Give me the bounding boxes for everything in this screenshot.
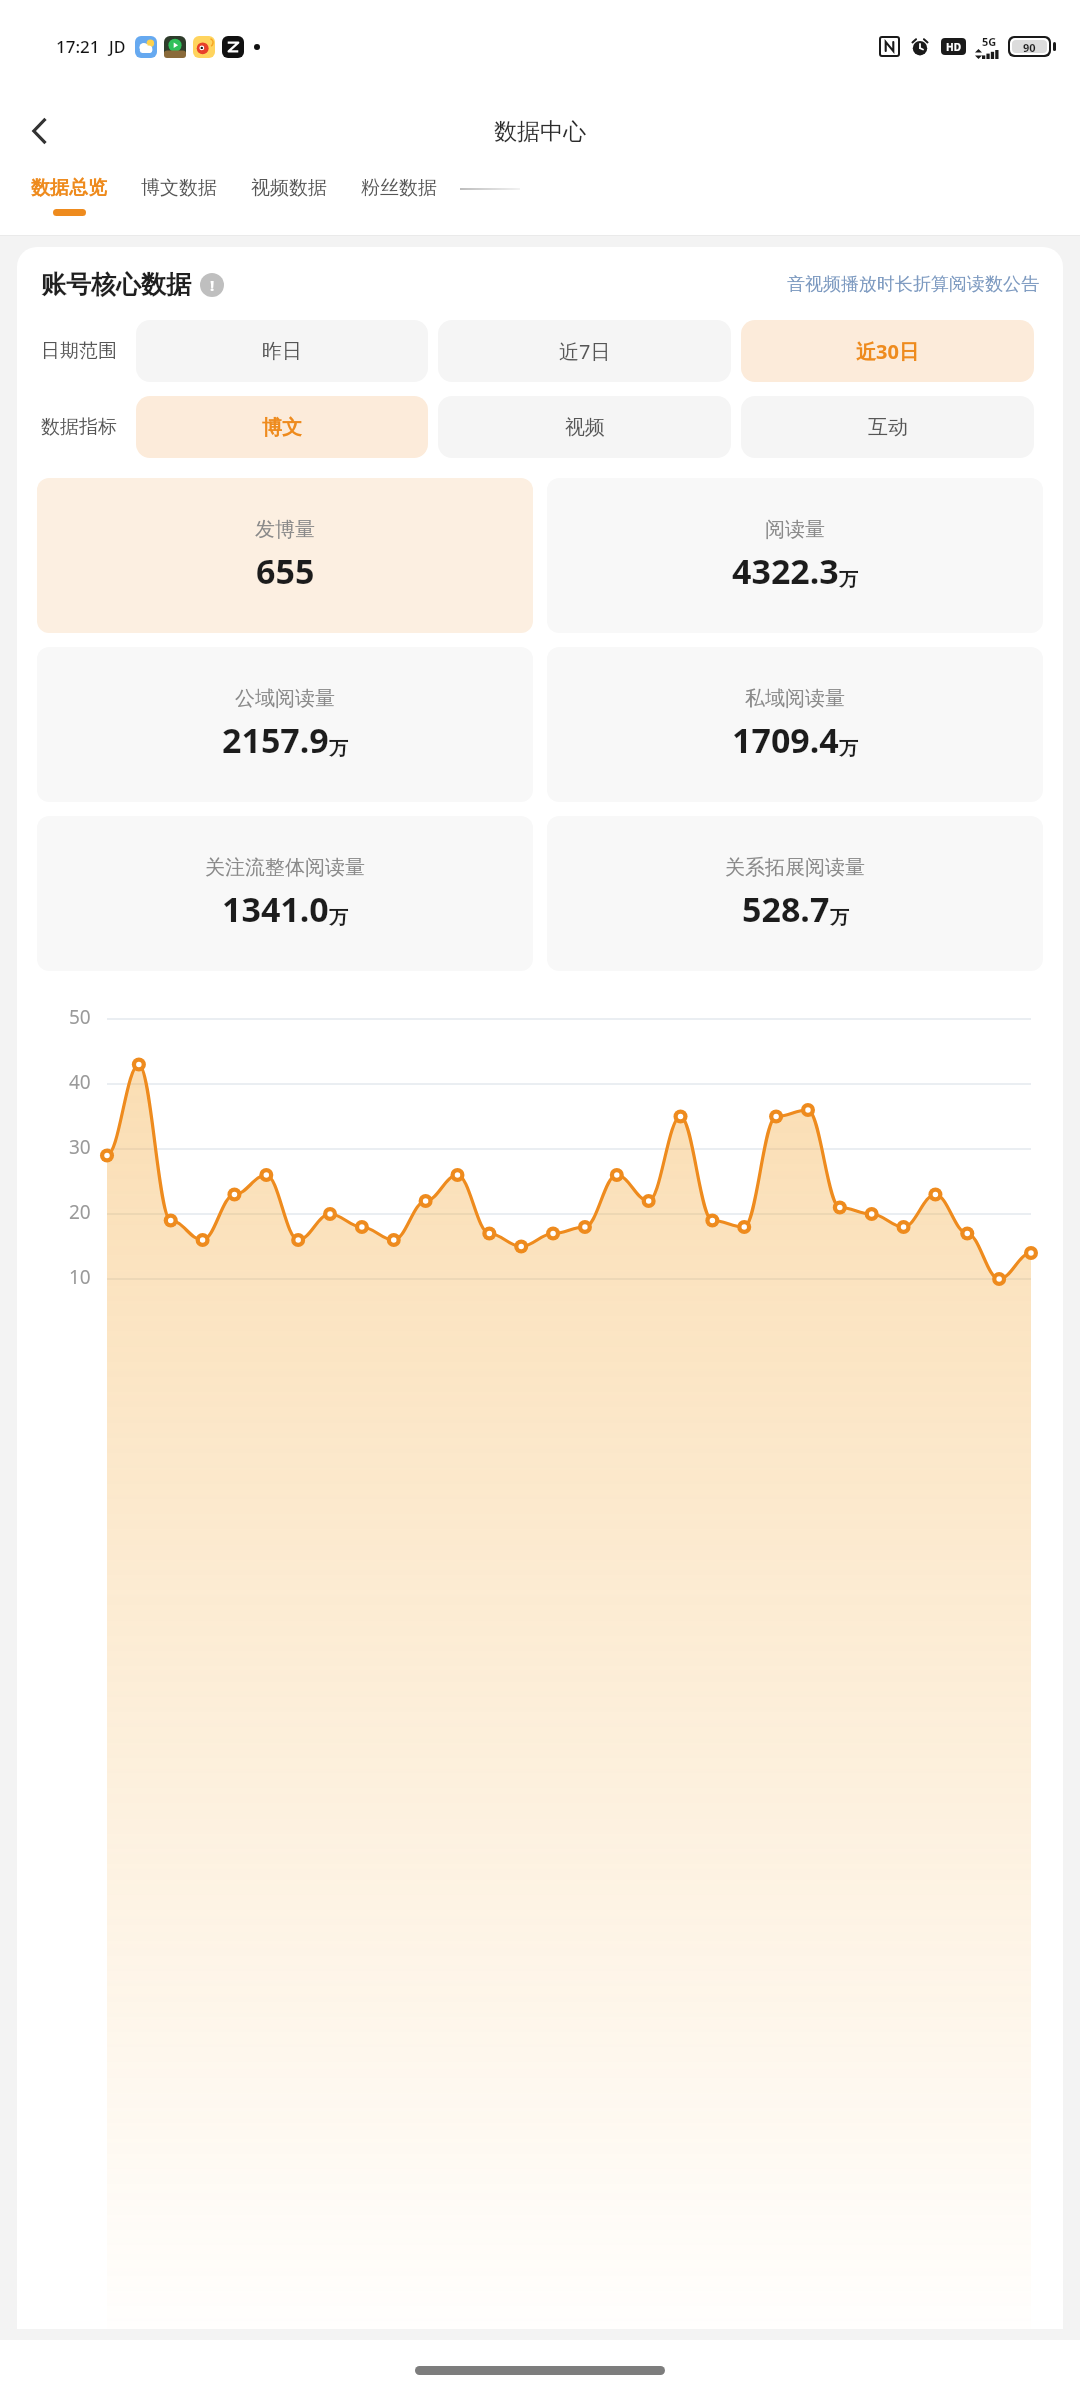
staticText: 博文 <box>262 415 302 440</box>
staticText: 30 <box>69 1134 91 1160</box>
staticText: 万 <box>329 906 348 930</box>
staticText: 关注流整体阅读量 <box>205 855 365 880</box>
staticText: 40 <box>69 1069 91 1095</box>
button[interactable]: 关系拓展阅读量 <box>547 816 1043 971</box>
staticText: 万 <box>839 568 858 592</box>
button[interactable]: Back <box>12 103 68 159</box>
staticText: 10 <box>69 1264 91 1290</box>
button[interactable]: 互动 <box>741 396 1034 458</box>
button[interactable]: 私域阅读量 <box>547 647 1043 802</box>
staticText: 数据中心 <box>494 117 586 146</box>
staticText: 20 <box>69 1199 91 1225</box>
staticText: 昨日 <box>262 339 302 364</box>
button[interactable]: 博文 <box>136 396 428 458</box>
button[interactable]: 音视频播放时长折算阅读数公告 <box>787 273 1039 296</box>
staticText: 关系拓展阅读量 <box>725 855 865 880</box>
staticText: 视频数据 <box>251 176 327 200</box>
staticText: 万 <box>839 737 858 761</box>
staticText: 博文数据 <box>141 176 217 200</box>
button[interactable]: 博文数据 <box>124 170 234 209</box>
staticText: 数据总览 <box>31 176 107 200</box>
button[interactable]: 公域阅读量 <box>37 647 533 802</box>
staticText: 粉丝数据 <box>361 176 437 200</box>
button[interactable]: 视频数据 <box>234 170 344 209</box>
button[interactable]: 数据总览 <box>14 170 124 216</box>
staticText: 1341.0 <box>222 886 329 932</box>
staticText: 万 <box>329 737 348 761</box>
staticText: 近7日 <box>559 338 611 365</box>
button[interactable]: 粉丝数据 <box>344 170 454 209</box>
staticText: 4322.3 <box>732 548 839 594</box>
button[interactable]: 关注流整体阅读量 <box>37 816 533 971</box>
staticText: 5G <box>982 34 997 49</box>
staticText: JD <box>109 36 126 58</box>
staticText: 发博量 <box>255 517 315 542</box>
staticText: 655 <box>256 548 315 594</box>
staticText: 17:21 <box>56 35 100 58</box>
staticText: 近30日 <box>856 338 919 365</box>
staticText: 数据指标 <box>41 415 117 439</box>
staticText: 账号核心数据 <box>41 269 191 300</box>
staticText: 528.7 <box>742 886 830 932</box>
staticText: 2157.9 <box>222 717 329 763</box>
button[interactable]: 视频 <box>438 396 731 458</box>
button[interactable]: 近30日 <box>741 320 1034 382</box>
staticText: 1709.4 <box>732 717 839 763</box>
staticText: 日期范围 <box>41 339 117 363</box>
staticText: 万 <box>830 906 849 930</box>
staticText: 互动 <box>868 415 908 440</box>
staticText: HD <box>946 40 961 54</box>
staticText: 公域阅读量 <box>235 686 335 711</box>
staticText: 90 <box>1023 40 1036 53</box>
button[interactable]: 阅读量 <box>547 478 1043 633</box>
button[interactable]: 近7日 <box>438 320 731 382</box>
staticText: 50 <box>69 1004 91 1030</box>
button[interactable]: 发博量 <box>37 478 533 633</box>
staticText: ! <box>210 275 215 295</box>
staticText: 音视频播放时长折算阅读数公告 <box>787 273 1039 296</box>
button[interactable]: Info <box>200 273 224 297</box>
button[interactable]: 昨日 <box>136 320 428 382</box>
staticText: 私域阅读量 <box>745 686 845 711</box>
staticText: 视频 <box>565 415 605 440</box>
staticText: 阅读量 <box>765 517 825 542</box>
